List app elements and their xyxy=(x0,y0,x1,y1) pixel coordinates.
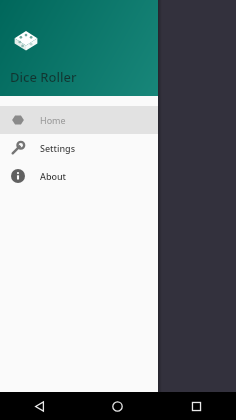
other: Settings xyxy=(11,141,25,155)
staticText: Home xyxy=(40,114,66,126)
other: About xyxy=(11,169,25,183)
button[interactable]: About xyxy=(0,162,158,190)
staticText: Dice Roller xyxy=(10,68,77,86)
button[interactable]: Back xyxy=(0,392,78,420)
staticText: Settings xyxy=(40,142,76,154)
other: Dice xyxy=(11,26,41,56)
button[interactable]: Settings xyxy=(0,134,158,162)
button[interactable]: Recents xyxy=(157,392,236,420)
button[interactable]: Home xyxy=(78,392,157,420)
button[interactable]: Home xyxy=(0,106,158,134)
staticText: About xyxy=(40,170,67,182)
other: Home xyxy=(11,113,25,127)
